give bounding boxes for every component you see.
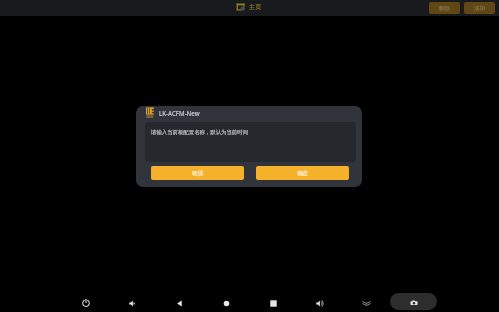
staticText: 删除 [439, 5, 451, 12]
staticText: 请输入当前板配置名称，默认为当前时间 [151, 129, 249, 136]
button[interactable]: 请输入当前板配置名称，默认为当前时间 [145, 122, 356, 162]
button[interactable]: Back [170, 294, 188, 312]
button[interactable]: 删除 [429, 2, 460, 14]
staticText: 主页 [249, 3, 262, 11]
button[interactable]: 添加 [464, 2, 495, 14]
button[interactable]: Expand [357, 294, 375, 312]
staticText: 添加 [474, 5, 486, 12]
button[interactable]: 主页 [236, 3, 262, 11]
button[interactable]: Volume up [310, 294, 328, 312]
button[interactable]: 确定 [256, 166, 349, 180]
staticText: 取消 [192, 170, 203, 177]
button[interactable]: Recents [264, 294, 282, 312]
staticText: LK-ACFM-New [159, 109, 200, 117]
button[interactable]: Power [77, 294, 95, 312]
staticText: 确定 [297, 170, 308, 177]
button[interactable]: Volume down [123, 294, 141, 312]
button[interactable]: Home [217, 294, 235, 312]
button[interactable]: Screenshot [390, 293, 437, 310]
button[interactable]: 取消 [151, 166, 244, 180]
